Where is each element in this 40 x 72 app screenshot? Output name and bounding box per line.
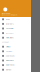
- button[interactable]: Favourites: [0, 26, 31, 31]
- staticText: Home: [6, 18, 10, 20]
- button[interactable]: Addresses: [0, 54, 31, 58]
- staticText: jane.cooper@mail.com: [2, 14, 17, 16]
- button[interactable]: Sign Out: [0, 67, 31, 72]
- staticText: Invite Friends: [6, 64, 15, 66]
- button[interactable]: Messages: [0, 31, 31, 35]
- staticText: Payment: [6, 50, 12, 52]
- staticText: Help Centre: [6, 60, 14, 61]
- staticText: ACCOUNT: [2, 41, 9, 43]
- staticText: My Orders: [6, 23, 14, 25]
- staticText: Messages: [6, 32, 14, 34]
- staticText: Jane Cooper: [2, 12, 11, 14]
- button[interactable]: My Orders: [0, 22, 31, 26]
- button[interactable]: Home: [0, 17, 31, 22]
- button[interactable]: Payment: [0, 49, 31, 54]
- staticText: Sign Out: [6, 69, 11, 71]
- staticText: Settings: [6, 46, 11, 48]
- staticText: Notifications: [6, 37, 14, 39]
- button[interactable]: Help Centre: [0, 58, 31, 63]
- button[interactable]: Invite Friends: [0, 63, 31, 67]
- staticText: Favourites: [6, 28, 14, 29]
- staticText: Addresses: [6, 55, 15, 57]
- button[interactable]: Notifications: [0, 35, 31, 40]
- button[interactable]: Settings: [0, 44, 31, 49]
